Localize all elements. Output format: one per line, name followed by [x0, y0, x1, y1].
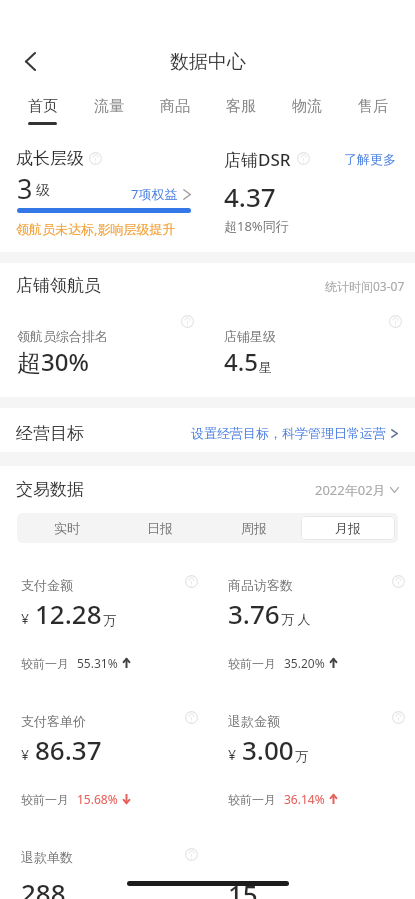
- staticText: 店铺DSR: [224, 148, 291, 171]
- staticText: 实时: [54, 520, 80, 536]
- button[interactable]: 2022年02月: [315, 481, 399, 499]
- staticText: 设置经营目标，科学管理日常运营: [191, 425, 386, 441]
- button[interactable]: Back: [12, 43, 48, 79]
- staticText: 物流: [292, 97, 322, 116]
- staticText: 较前一月: [21, 792, 69, 807]
- staticText: 较前一月: [21, 656, 69, 671]
- staticText: 3: [17, 170, 33, 203]
- staticText: 领航员未达标,影响层级提升: [16, 220, 176, 238]
- button[interactable]: 物流: [274, 82, 340, 133]
- staticText: 商品: [160, 97, 190, 116]
- staticText: 3.00: [242, 732, 294, 767]
- staticText: 55.31%: [77, 655, 118, 671]
- staticText: 36.14%: [284, 791, 325, 807]
- staticText: 星: [259, 359, 272, 375]
- staticText: 15.68%: [77, 791, 118, 807]
- staticText: 万: [295, 748, 308, 764]
- staticText: 超18%同行: [224, 217, 289, 235]
- staticText: 商品访客数: [228, 577, 293, 593]
- button[interactable]: 首页: [9, 82, 76, 133]
- staticText: 首页: [28, 97, 58, 116]
- staticText: 较前一月: [228, 656, 276, 671]
- staticText: 日报: [147, 520, 173, 536]
- staticText: 万: [103, 612, 116, 628]
- button[interactable]: 月报: [301, 516, 395, 540]
- staticText: 级: [36, 182, 50, 200]
- staticText: ¥: [228, 745, 237, 764]
- button[interactable]: 客服: [208, 82, 274, 133]
- staticText: 3.76: [228, 596, 280, 631]
- staticText: 4.37: [224, 179, 276, 214]
- button[interactable]: 设置经营目标，科学管理日常运营: [191, 423, 398, 439]
- staticText: 流量: [94, 97, 124, 116]
- staticText: 较前一月: [228, 792, 276, 807]
- button[interactable]: 了解更多: [344, 151, 396, 167]
- staticText: 退款金额: [228, 713, 280, 729]
- button[interactable]: 售后: [340, 82, 406, 133]
- button[interactable]: 实时: [20, 516, 113, 540]
- staticText: 35.20%: [284, 655, 325, 671]
- staticText: ¥: [21, 609, 30, 628]
- staticText: 288: [21, 875, 66, 899]
- staticText: 数据中心: [170, 50, 246, 74]
- staticText: 支付金额: [21, 577, 73, 593]
- staticText: 2022年02月: [315, 481, 386, 499]
- button[interactable]: 商品: [142, 82, 208, 133]
- button[interactable]: 流量: [76, 82, 142, 133]
- staticText: 经营目标: [16, 423, 84, 444]
- staticText: 成长层级: [16, 148, 84, 169]
- staticText: 支付客单价: [21, 713, 86, 729]
- staticText: 客服: [226, 97, 256, 116]
- staticText: 退款单数: [21, 849, 73, 865]
- staticText: 店铺星级: [224, 328, 276, 344]
- staticText: 4.5: [224, 345, 258, 378]
- staticText: 售后: [358, 97, 388, 116]
- staticText: 超30%: [17, 345, 89, 378]
- staticText: 86.37: [35, 732, 102, 767]
- button[interactable]: 日报: [113, 516, 207, 540]
- staticText: 月报: [335, 520, 361, 536]
- staticText: 7项权益: [131, 185, 178, 203]
- staticText: 12.28: [35, 596, 102, 631]
- staticText: ¥: [21, 745, 30, 764]
- staticText: 统计时间03-07: [325, 278, 405, 294]
- staticText: 万 人: [281, 610, 311, 628]
- staticText: 周报: [241, 520, 267, 536]
- button[interactable]: 周报: [207, 516, 301, 540]
- staticText: 领航员综合排名: [17, 328, 108, 344]
- staticText: 店铺领航员: [16, 275, 101, 296]
- staticText: 交易数据: [16, 479, 84, 500]
- staticText: 15: [228, 876, 258, 899]
